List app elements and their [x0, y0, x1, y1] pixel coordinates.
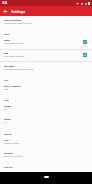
button[interactable]: Img	[83, 53, 87, 57]
staticText: Personal settings	[4, 19, 21, 22]
staticText: Files	[4, 139, 9, 142]
staticText: Img	[4, 52, 8, 55]
staticText: Shows input for height	[4, 42, 92, 45]
button[interactable]	[0, 150, 92, 163]
button[interactable]	[0, 115, 92, 128]
staticText: Connect to HR/Temp	[4, 155, 92, 158]
staticText: Settings	[11, 9, 25, 14]
button[interactable]	[0, 16, 92, 30]
button[interactable]: Wheel	[83, 40, 87, 44]
staticText: Length	[4, 118, 11, 121]
staticText: Wheel	[4, 39, 11, 42]
staticText: Calendar	[4, 166, 13, 169]
staticText: Memory	[4, 133, 13, 136]
button[interactable]	[0, 36, 92, 49]
staticText: Weight	[4, 105, 12, 108]
staticText: Shows input for weight	[4, 55, 92, 58]
staticText: Metric / Imperial	[4, 85, 21, 88]
button[interactable]: Back	[0, 6, 11, 16]
staticText: Travel/formatting, measurement	[4, 68, 92, 71]
staticText: Connect to folder	[4, 142, 92, 145]
staticText: Unit	[4, 88, 92, 91]
staticText: cm	[4, 121, 92, 124]
staticText: Unit	[4, 79, 9, 82]
staticText: Units	[4, 99, 10, 102]
staticText: HR/Temp	[4, 152, 13, 155]
staticText: kg	[4, 108, 92, 111]
staticText: 3:34	[2, 1, 8, 5]
staticText: Configure date of birth, gender...	[4, 22, 92, 25]
button[interactable]	[0, 50, 92, 62]
staticText: Set height	[4, 65, 15, 68]
button[interactable]	[0, 101, 92, 114]
staticText: Input	[4, 33, 10, 36]
button[interactable]	[0, 136, 92, 149]
button[interactable]	[0, 82, 92, 96]
button[interactable]	[0, 62, 92, 76]
